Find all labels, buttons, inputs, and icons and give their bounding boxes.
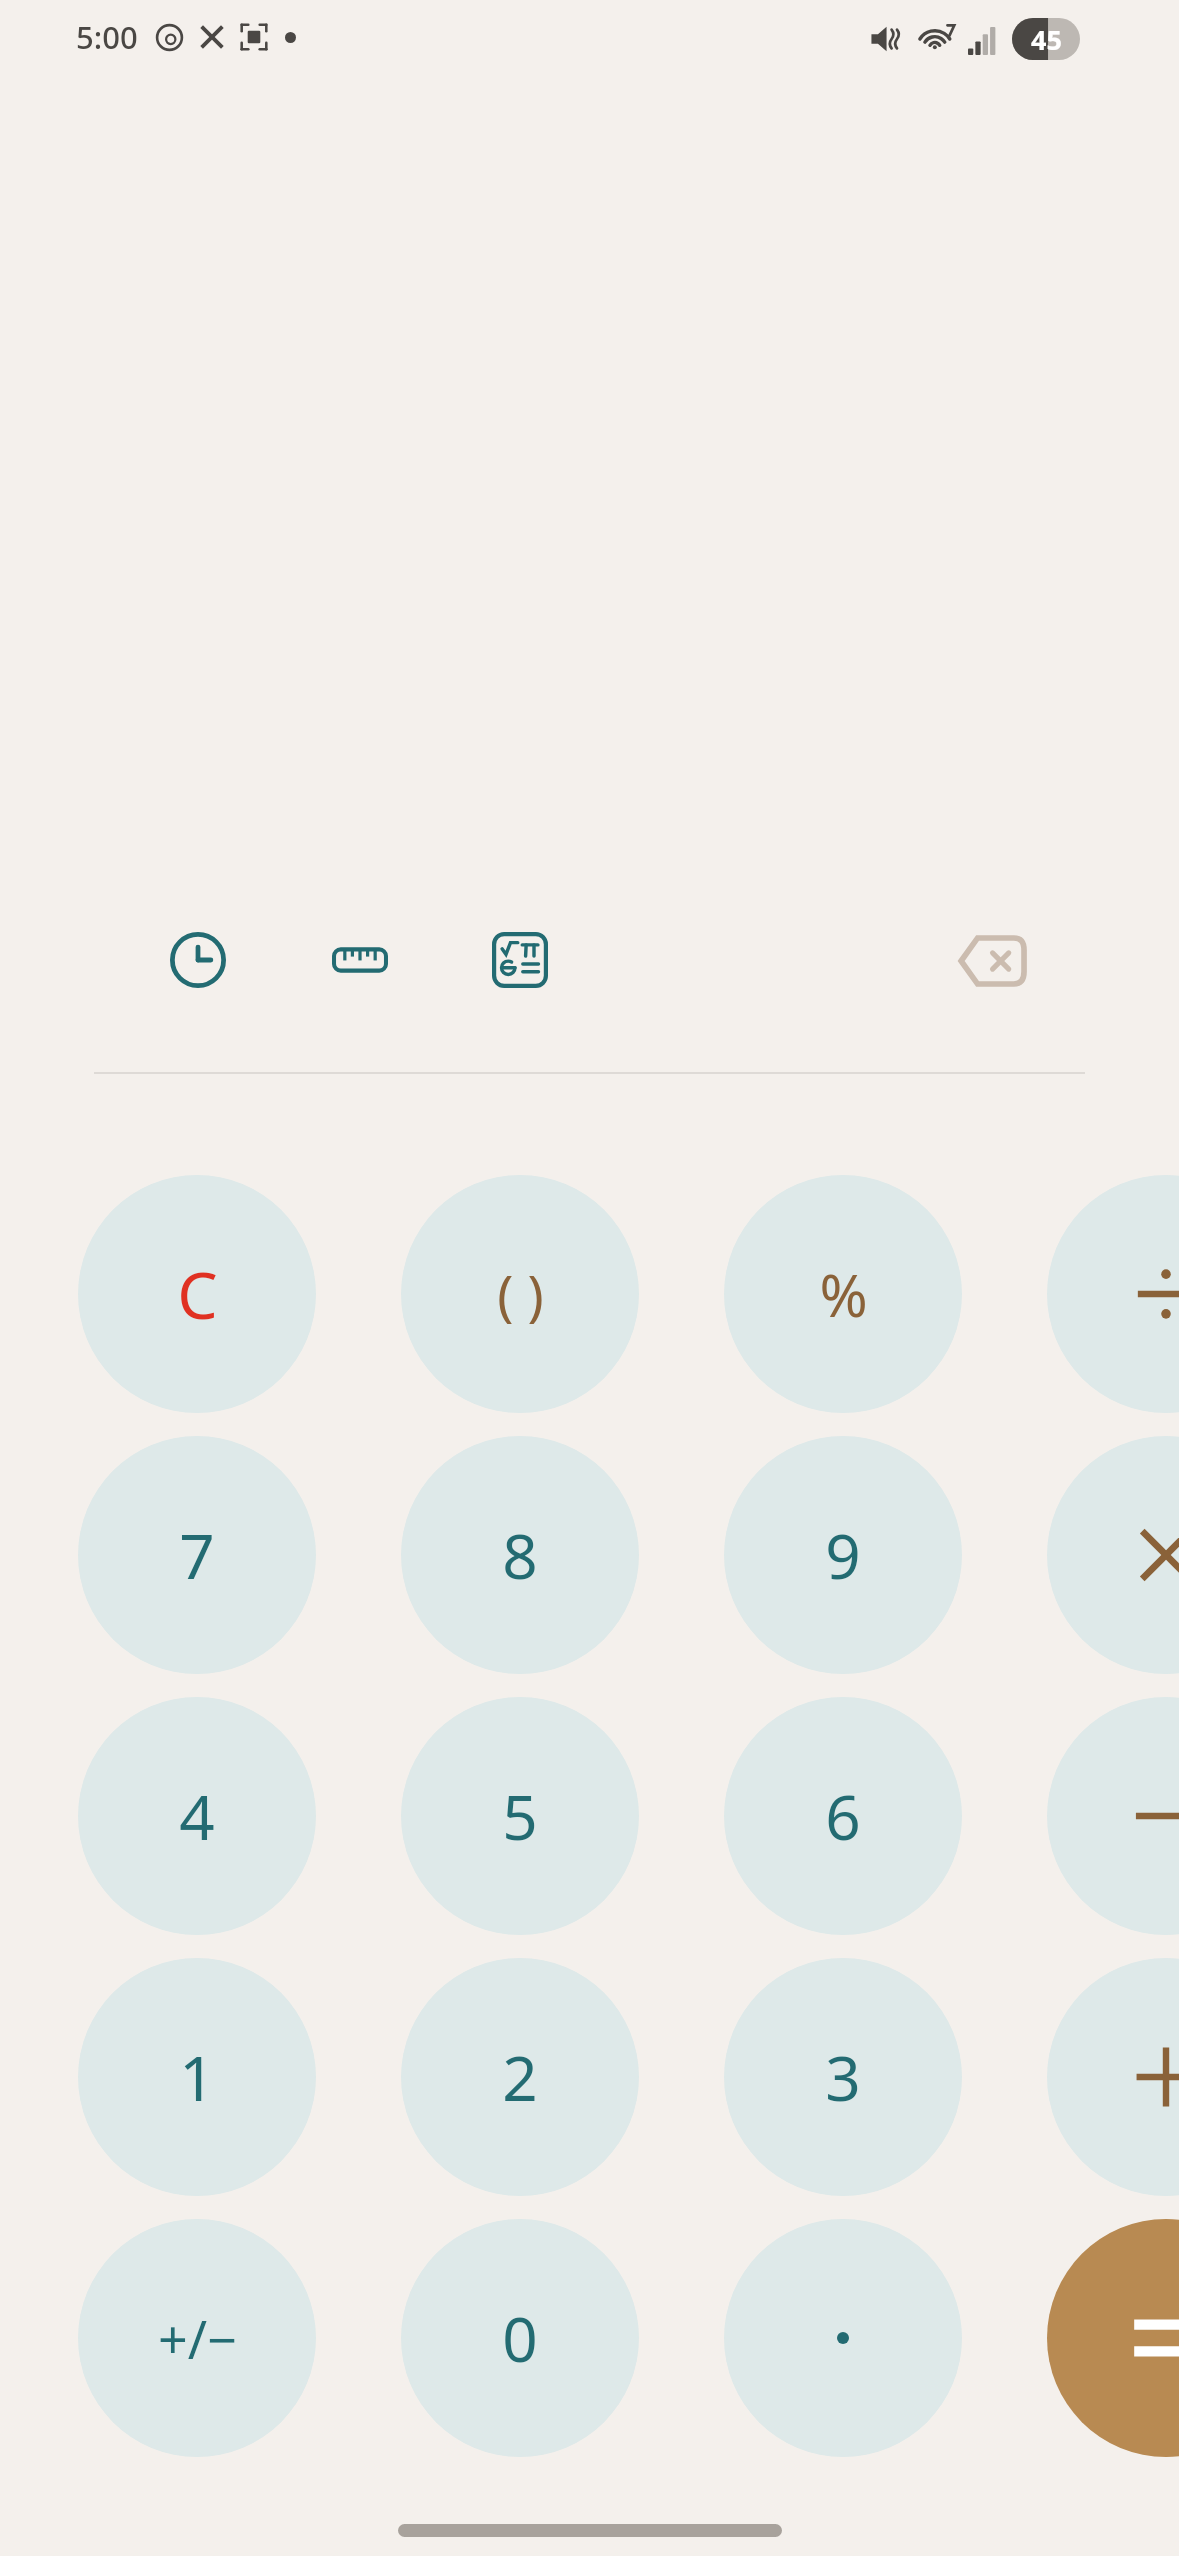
staticText: 4 <box>179 1774 215 1858</box>
staticText: C <box>177 1251 218 1338</box>
button[interactable]: 9 <box>724 1436 962 1674</box>
staticText: 8 <box>502 1513 538 1597</box>
button[interactable]: 0 <box>401 2219 639 2457</box>
staticText: 2 <box>502 2035 538 2119</box>
staticText: 5:00 <box>76 16 138 58</box>
staticText: 3 <box>825 2035 861 2119</box>
button[interactable]: History <box>162 924 234 996</box>
button[interactable]: 8 <box>401 1436 639 1674</box>
button[interactable]: % <box>724 1175 962 1413</box>
button[interactable]: Plus <box>1047 1958 1179 2196</box>
button[interactable]: +/− <box>78 2219 316 2457</box>
staticText: +/− <box>158 2303 237 2374</box>
button[interactable]: 1 <box>78 1958 316 2196</box>
staticText: 7 <box>179 1513 215 1597</box>
staticText: 5 <box>502 1774 538 1858</box>
button[interactable]: ( ) <box>401 1175 639 1413</box>
button[interactable]: 2 <box>401 1958 639 2196</box>
button[interactable]: Unit converter <box>324 924 396 996</box>
staticText: 0 <box>502 2296 538 2380</box>
button[interactable]: Decimal point <box>724 2219 962 2457</box>
staticText: % <box>819 1255 868 1334</box>
button[interactable]: Scientific <box>484 924 556 996</box>
button[interactable]: Divide <box>1047 1175 1179 1413</box>
button[interactable]: Minus <box>1047 1697 1179 1935</box>
button[interactable]: 3 <box>724 1958 962 2196</box>
button[interactable]: Equals <box>1047 2219 1179 2457</box>
staticText: 1 <box>179 2035 215 2119</box>
button[interactable]: 4 <box>78 1697 316 1935</box>
staticText: 6 <box>825 1774 861 1858</box>
button[interactable]: 6 <box>724 1697 962 1935</box>
staticText: 9 <box>825 1513 861 1597</box>
button[interactable]: Backspace <box>953 922 1031 1000</box>
button[interactable]: 7 <box>78 1436 316 1674</box>
button[interactable]: 5 <box>401 1697 639 1935</box>
button[interactable]: Multiply <box>1047 1436 1179 1674</box>
staticText: 45 <box>1031 21 1062 58</box>
staticText: ( ) <box>497 1257 544 1331</box>
button[interactable]: C <box>78 1175 316 1413</box>
